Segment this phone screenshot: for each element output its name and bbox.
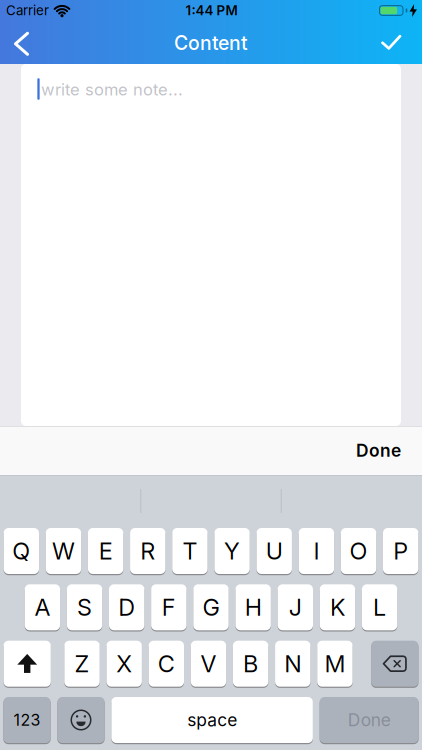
button[interactable]: N bbox=[275, 640, 310, 687]
staticText: N bbox=[284, 649, 301, 678]
button[interactable]: 123 bbox=[3, 696, 51, 744]
button[interactable]: D bbox=[109, 584, 144, 631]
button[interactable]: Save bbox=[379, 30, 409, 56]
staticText: L bbox=[373, 593, 386, 621]
button[interactable]: X bbox=[106, 640, 142, 687]
staticText: F bbox=[162, 593, 176, 621]
button[interactable]: K bbox=[320, 584, 355, 631]
button[interactable]: P bbox=[383, 527, 418, 575]
staticText: I bbox=[313, 537, 319, 565]
staticText: Done bbox=[356, 440, 401, 461]
staticText: P bbox=[393, 537, 408, 565]
button[interactable]: Shift bbox=[4, 640, 51, 687]
staticText: Carrier bbox=[6, 3, 49, 18]
button[interactable]: E bbox=[88, 527, 123, 575]
staticText: T bbox=[182, 537, 197, 565]
staticText: Q bbox=[12, 537, 30, 565]
staticText: write some note... bbox=[41, 79, 183, 99]
button[interactable]: Delete bbox=[371, 640, 418, 687]
staticText: V bbox=[200, 649, 216, 678]
button[interactable]: F bbox=[151, 584, 187, 631]
button[interactable]: T bbox=[172, 527, 208, 575]
button[interactable]: B bbox=[233, 640, 268, 687]
staticText: H bbox=[245, 593, 262, 621]
staticText: C bbox=[158, 649, 175, 678]
button[interactable]: S bbox=[67, 584, 102, 631]
button[interactable]: U bbox=[256, 527, 292, 575]
button[interactable]: A bbox=[25, 584, 60, 631]
staticText: W bbox=[52, 537, 75, 565]
staticText: B bbox=[243, 649, 258, 678]
staticText: O bbox=[349, 537, 367, 565]
staticText: M bbox=[324, 649, 345, 678]
staticText: D bbox=[118, 593, 135, 621]
button[interactable]: Done bbox=[356, 440, 422, 461]
button[interactable]: Done bbox=[320, 696, 419, 744]
button[interactable]: space bbox=[111, 696, 313, 744]
button[interactable]: H bbox=[235, 584, 271, 631]
button[interactable]: C bbox=[149, 640, 184, 687]
button[interactable]: Y bbox=[214, 527, 250, 575]
button[interactable]: W bbox=[46, 527, 81, 575]
button[interactable]: O bbox=[341, 527, 376, 575]
button[interactable]: M bbox=[317, 640, 353, 687]
staticText: 123 bbox=[13, 711, 40, 729]
button[interactable]: Emoji bbox=[57, 696, 105, 744]
staticText: S bbox=[77, 593, 92, 621]
button[interactable]: R bbox=[130, 527, 165, 575]
staticText: A bbox=[34, 593, 50, 621]
button[interactable]: G bbox=[193, 584, 229, 631]
button[interactable]: Back bbox=[7, 26, 37, 60]
staticText: G bbox=[202, 593, 219, 621]
staticText: Y bbox=[224, 537, 240, 565]
staticText: 1:44 PM bbox=[185, 2, 237, 18]
staticText: X bbox=[116, 649, 132, 678]
button[interactable]: I bbox=[299, 527, 334, 575]
staticText: space bbox=[187, 710, 237, 730]
staticText: U bbox=[266, 537, 283, 565]
staticText: Z bbox=[74, 649, 89, 678]
staticText: Done bbox=[348, 710, 391, 730]
staticText: E bbox=[99, 537, 113, 565]
staticText: K bbox=[330, 593, 345, 621]
staticText: J bbox=[289, 593, 302, 621]
staticText: R bbox=[140, 537, 155, 565]
button[interactable]: L bbox=[362, 584, 397, 631]
button[interactable]: Z bbox=[64, 640, 100, 687]
button[interactable]: V bbox=[191, 640, 226, 687]
staticText: Content bbox=[174, 31, 248, 55]
button[interactable]: Q bbox=[4, 527, 39, 575]
button[interactable]: J bbox=[278, 584, 313, 631]
